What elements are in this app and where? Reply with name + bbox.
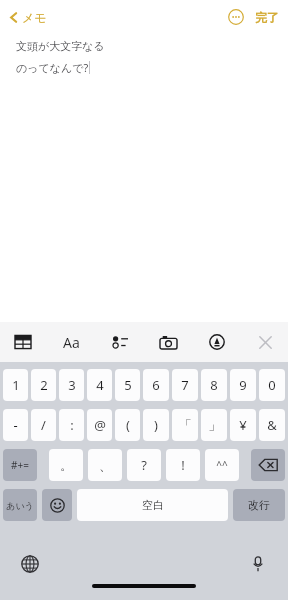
staticText: メモ: [22, 10, 47, 25]
button[interactable]: ¥: [230, 409, 256, 441]
button[interactable]: 7: [172, 369, 198, 401]
staticText: 、: [99, 457, 112, 473]
button[interactable]: ^^: [205, 449, 239, 481]
button[interactable]: 1: [3, 369, 28, 401]
button[interactable]: あいう: [3, 489, 37, 521]
staticText: 2: [40, 376, 48, 394]
staticText: 8: [210, 376, 218, 394]
button[interactable]: !: [166, 449, 200, 481]
button[interactable]: [251, 449, 285, 481]
staticText: 9: [239, 376, 247, 394]
staticText: 文頭が大文字なる: [16, 39, 105, 53]
staticText: :: [70, 416, 74, 434]
button[interactable]: Checklist: [105, 327, 135, 357]
button[interactable]: #+=: [3, 449, 37, 481]
button[interactable]: 4: [87, 369, 112, 401]
button[interactable]: 」: [201, 409, 227, 441]
button[interactable]: 8: [201, 369, 227, 401]
button[interactable]: 9: [230, 369, 256, 401]
button[interactable]: Markup: [202, 327, 232, 357]
staticText: &: [267, 416, 277, 434]
staticText: @: [94, 416, 106, 434]
button[interactable]: 0: [259, 369, 285, 401]
staticText: あいう: [6, 500, 34, 511]
button[interactable]: @: [87, 409, 112, 441]
staticText: !: [181, 456, 185, 474]
button[interactable]: Close keyboard: [250, 327, 280, 357]
button[interactable]: 6: [143, 369, 169, 401]
button[interactable]: 2: [31, 369, 56, 401]
button[interactable]: Dictation: [246, 552, 270, 576]
button[interactable]: (: [115, 409, 140, 441]
staticText: 4: [96, 376, 104, 394]
button[interactable]: :: [59, 409, 84, 441]
button[interactable]: &: [259, 409, 285, 441]
staticText: 7: [181, 376, 189, 394]
staticText: #+=: [11, 458, 29, 472]
button[interactable]: 完了: [255, 10, 279, 25]
button[interactable]: /: [31, 409, 56, 441]
staticText: ^^: [216, 458, 228, 472]
button[interactable]: 空白: [77, 489, 228, 521]
staticText: 。: [60, 457, 73, 473]
staticText: -: [13, 416, 18, 434]
button[interactable]: -: [3, 409, 28, 441]
staticText: 6: [152, 376, 160, 394]
button[interactable]: [42, 489, 72, 521]
staticText: 0: [268, 376, 276, 394]
staticText: ¥: [239, 416, 247, 434]
button[interactable]: Change keyboard: [18, 552, 42, 576]
staticText: ): [154, 416, 158, 434]
button[interactable]: 5: [115, 369, 140, 401]
staticText: 改行: [248, 498, 270, 512]
button[interactable]: 「: [172, 409, 198, 441]
staticText: 空白: [142, 498, 164, 512]
button[interactable]: Text formatting: [56, 327, 86, 357]
button[interactable]: Insert table: [8, 327, 38, 357]
staticText: 」: [208, 417, 221, 433]
button[interactable]: メモ: [7, 10, 47, 25]
staticText: Aa: [63, 333, 80, 352]
button[interactable]: ): [143, 409, 169, 441]
staticText: 5: [124, 376, 132, 394]
staticText: 「: [179, 417, 192, 433]
button[interactable]: More options: [226, 7, 246, 27]
staticText: (: [126, 416, 130, 434]
button[interactable]: 、: [88, 449, 122, 481]
staticText: ?: [141, 456, 147, 474]
button[interactable]: 3: [59, 369, 84, 401]
button[interactable]: 。: [49, 449, 83, 481]
button[interactable]: Camera: [153, 327, 183, 357]
staticText: 3: [68, 376, 76, 394]
button[interactable]: ?: [127, 449, 161, 481]
button[interactable]: 改行: [233, 489, 285, 521]
staticText: /: [41, 416, 46, 434]
staticText: 1: [12, 376, 20, 394]
staticText: のってなんで?: [16, 60, 89, 75]
staticText: 完了: [255, 10, 279, 25]
